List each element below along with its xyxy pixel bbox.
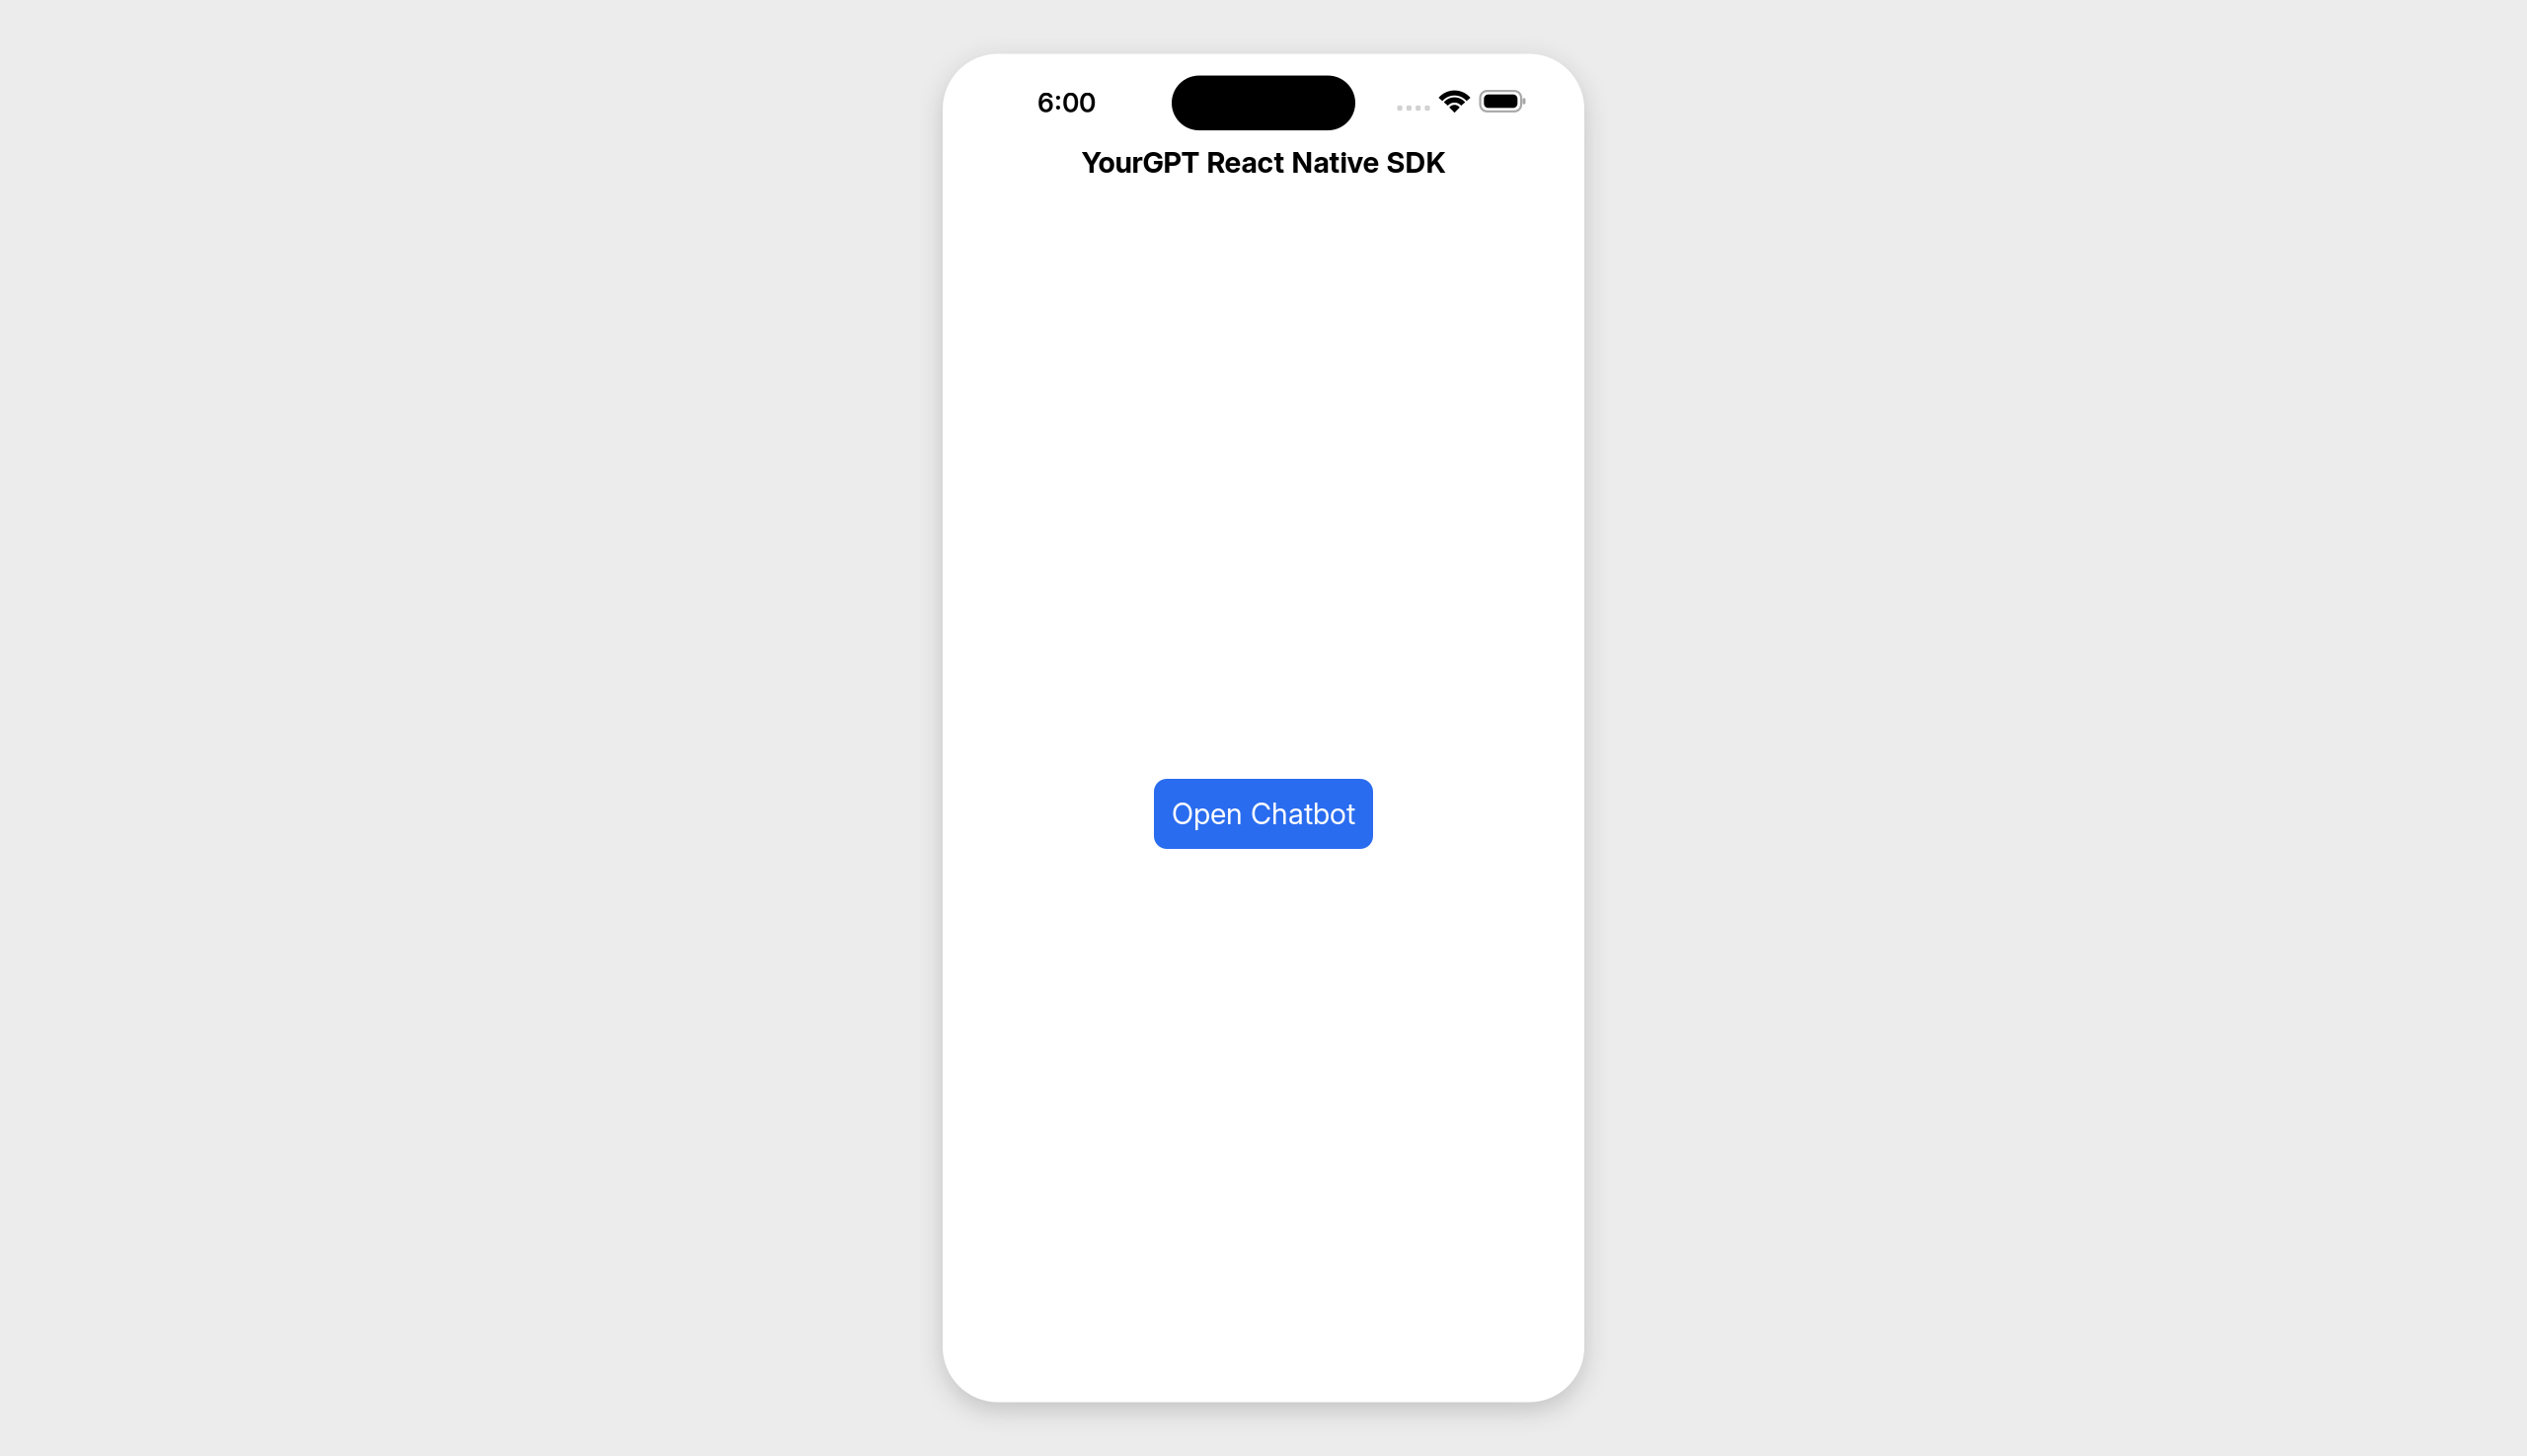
- staticText: Open Chatbot: [1172, 797, 1355, 831]
- button[interactable]: Open Chatbot: [1154, 779, 1373, 849]
- staticText: 6:00: [1037, 87, 1096, 119]
- staticText: YourGPT React Native SDK: [1081, 145, 1446, 180]
